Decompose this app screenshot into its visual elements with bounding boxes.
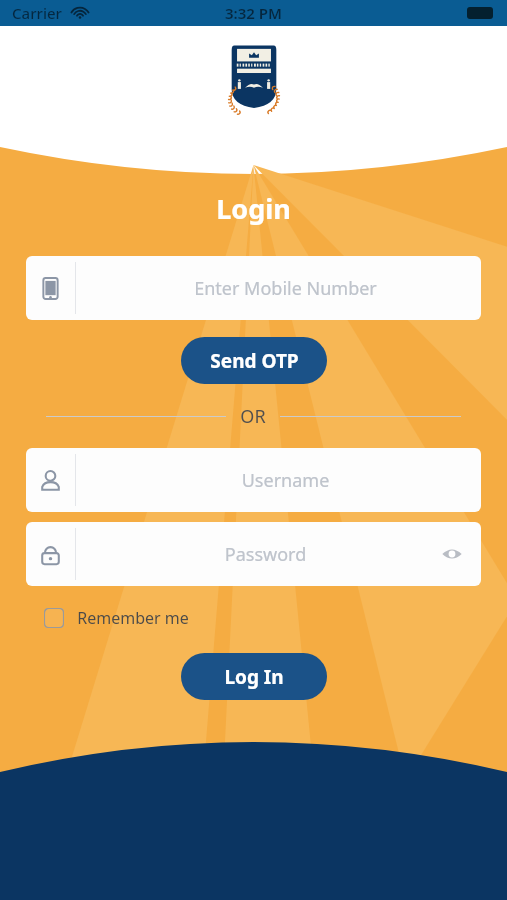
button[interactable]: Password: [26, 522, 481, 586]
button[interactable]: Mobile: [26, 256, 481, 320]
other: Light Thy Soul logo: [223, 44, 285, 122]
staticText: Password: [90, 542, 441, 567]
button[interactable]: Log In: [181, 653, 327, 700]
other: Mobile: [39, 277, 62, 300]
staticText: Carrier: [12, 3, 62, 23]
staticText: Remember me: [77, 607, 189, 629]
staticText: 3:32 PM: [225, 3, 282, 23]
button[interactable]: Remember me: [44, 607, 481, 629]
other: Password: [39, 543, 62, 566]
staticText: Login: [216, 190, 291, 227]
button[interactable]: Send OTP: [181, 337, 327, 384]
staticText: Username: [90, 468, 481, 493]
staticText: Enter Mobile Number: [90, 276, 481, 301]
button[interactable]: Show password: [441, 543, 463, 565]
staticText: Log In: [224, 664, 284, 690]
staticText: Send OTP: [210, 348, 299, 374]
other: Username: [39, 469, 62, 492]
button[interactable]: Username: [26, 448, 481, 512]
staticText: OR: [240, 404, 266, 429]
